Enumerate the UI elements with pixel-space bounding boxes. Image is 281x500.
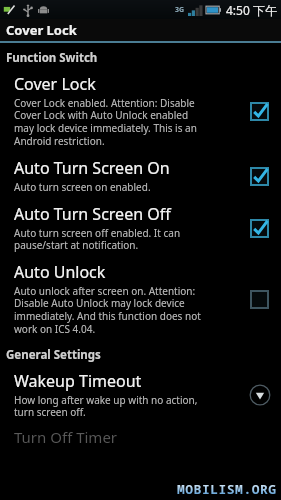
staticText: How long after wake up with no action, t… bbox=[14, 393, 198, 419]
staticText: Cover Lock bbox=[14, 73, 96, 95]
button[interactable]: Unchecked bbox=[247, 287, 271, 311]
button[interactable]: Checked bbox=[247, 216, 271, 240]
button[interactable]: Checked bbox=[247, 99, 271, 123]
staticText: Cover Lock bbox=[6, 21, 77, 39]
button[interactable]: Cover Lock bbox=[0, 69, 281, 153]
staticText: Function Switch bbox=[6, 50, 98, 66]
staticText: 4:50 下午 bbox=[226, 2, 277, 18]
staticText: 3G bbox=[175, 5, 185, 15]
staticText: Turn Off Timer bbox=[14, 427, 118, 447]
staticText: Auto Unlock bbox=[14, 261, 106, 283]
staticText: Wakeup Timeout bbox=[14, 370, 142, 392]
button[interactable]: Wakeup Timeout bbox=[0, 366, 281, 424]
staticText: Auto turn screen off enabled. It can pau… bbox=[14, 226, 181, 252]
button[interactable]: Auto Turn Screen On bbox=[0, 153, 281, 199]
button[interactable]: Cover Lock bbox=[0, 19, 281, 41]
staticText: Auto turn screen on enabled. bbox=[14, 180, 151, 194]
staticText: General Settings bbox=[6, 347, 101, 363]
button[interactable]: Auto Unlock bbox=[0, 257, 281, 341]
button[interactable]: Auto Turn Screen Off bbox=[0, 199, 281, 257]
staticText: Auto Turn Screen Off bbox=[14, 203, 171, 225]
button[interactable]: Checked bbox=[247, 164, 271, 188]
button[interactable]: Expand Wakeup Timeout options bbox=[249, 384, 271, 406]
staticText: Auto unlock after screen on. Attention: … bbox=[14, 284, 201, 336]
staticText: MOBILISM.ORG bbox=[177, 480, 277, 498]
button[interactable]: Turn Off Timer bbox=[0, 424, 281, 454]
staticText: Auto Turn Screen On bbox=[14, 157, 170, 179]
staticText: Cover Lock enabled. Attention: Disable C… bbox=[14, 96, 197, 148]
